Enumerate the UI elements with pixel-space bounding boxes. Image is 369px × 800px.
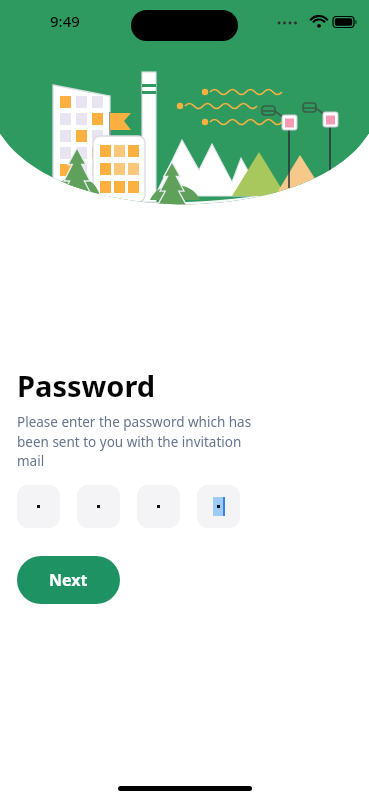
staticText: Next — [49, 569, 88, 591]
button[interactable]: Password digit — [77, 485, 120, 528]
button[interactable]: Password digit — [197, 485, 240, 528]
staticText: 9:49 — [50, 11, 80, 31]
staticText: Please enter the password which has been… — [17, 413, 265, 470]
staticText: Password — [17, 366, 156, 405]
button[interactable]: Next — [17, 556, 120, 604]
button[interactable]: Password digit — [137, 485, 180, 528]
button[interactable]: Password digit — [17, 485, 60, 528]
